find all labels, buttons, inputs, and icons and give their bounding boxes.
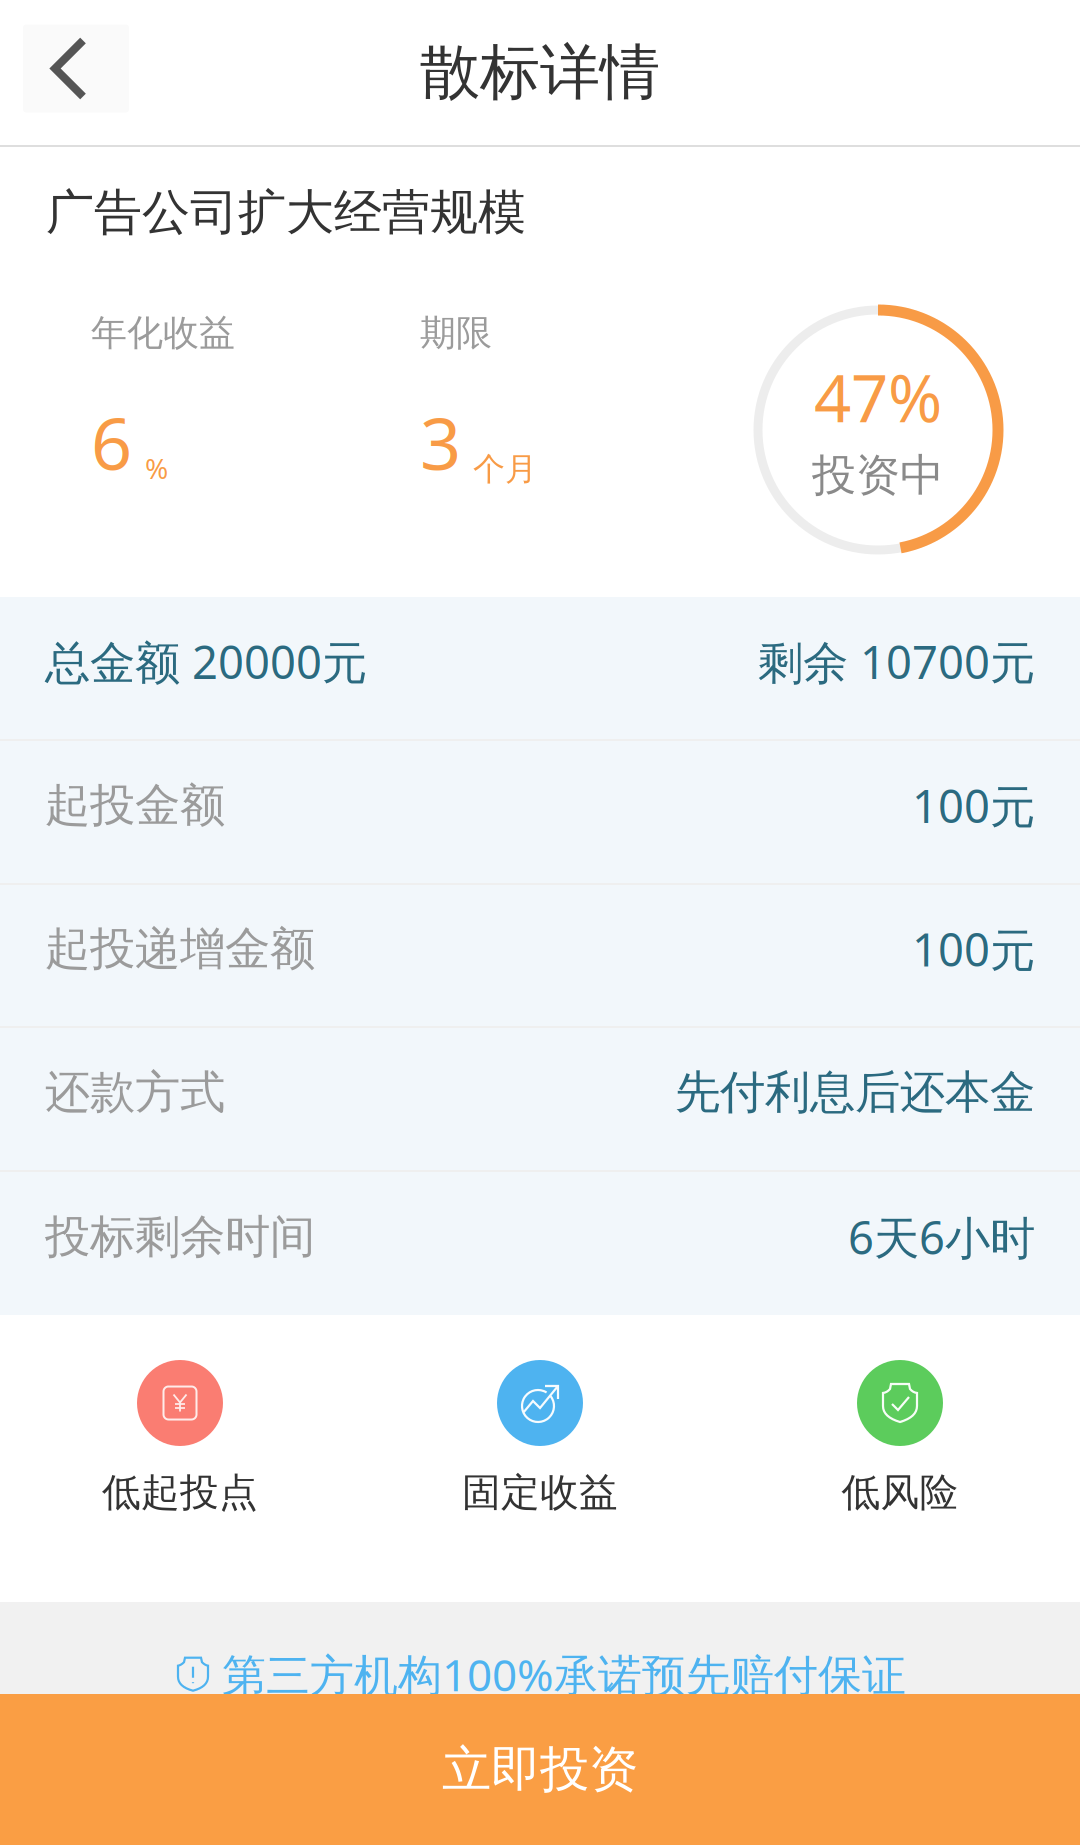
staticText: 低起投点 — [102, 1469, 258, 1516]
staticText: 固定收益 — [462, 1469, 618, 1516]
button[interactable]: 立即投资 — [0, 1694, 1080, 1845]
staticText: 个月 — [473, 449, 537, 489]
staticText: 投资中 — [812, 448, 944, 502]
staticText: 期限 — [420, 311, 492, 355]
staticText: 年化收益 — [91, 311, 235, 355]
staticText: 第三方机构100%承诺预先赔付保证 — [222, 1645, 906, 1703]
staticText: 100元 — [912, 775, 1035, 836]
staticText: 先付利息后还本金 — [675, 1065, 1035, 1120]
staticText: 3 — [420, 394, 461, 490]
button[interactable]: Back — [0, 0, 130, 145]
staticText: 起投递增金额 — [45, 921, 315, 977]
staticText: 总金额 20000元 — [45, 631, 367, 692]
staticText: 立即投资 — [442, 1739, 638, 1800]
staticText: 100元 — [912, 919, 1035, 979]
staticText: 6天6小时 — [848, 1207, 1035, 1267]
staticText: 还款方式 — [45, 1065, 225, 1120]
staticText: 起投金额 — [45, 778, 225, 833]
staticText: 投标剩余时间 — [45, 1209, 315, 1265]
staticText: 剩余 10700元 — [758, 631, 1035, 692]
staticText: 广告公司扩大经营规模 — [46, 183, 526, 242]
staticText: % — [145, 450, 168, 487]
staticText: 散标详情 — [420, 36, 660, 109]
staticText: 6 — [91, 394, 132, 490]
staticText: 47% — [814, 354, 942, 440]
staticText: 低风险 — [841, 1469, 958, 1516]
